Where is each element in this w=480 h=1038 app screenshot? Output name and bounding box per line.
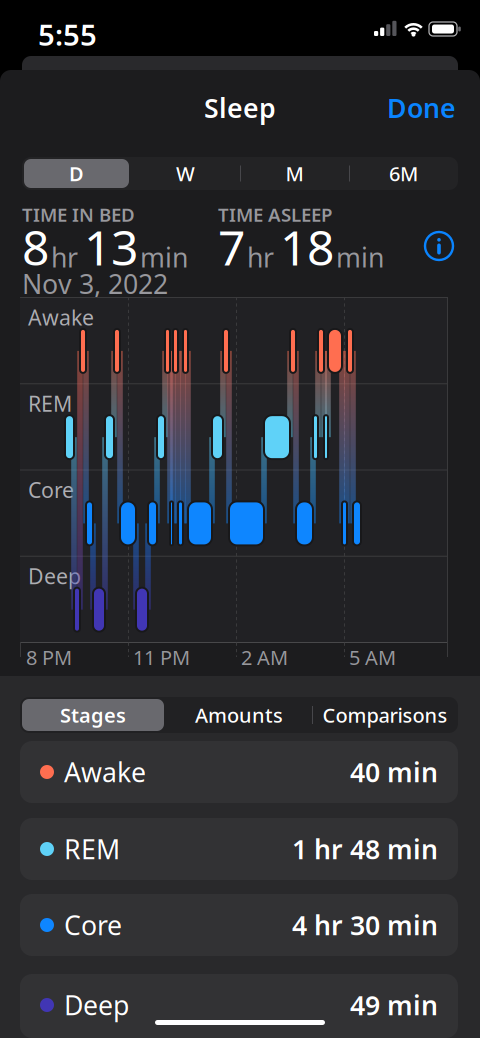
staticText: 40 min	[350, 754, 438, 790]
staticText: REM	[28, 389, 72, 417]
staticText: 11 PM	[133, 644, 190, 671]
staticText: 18	[280, 215, 334, 279]
button[interactable]: D	[22, 157, 131, 190]
staticText: 8 PM	[26, 644, 72, 671]
staticText: min	[140, 239, 188, 275]
staticText: 2 AM	[241, 644, 288, 671]
staticText: 4 hr 30 min	[292, 907, 438, 943]
staticText: 8	[22, 215, 49, 279]
staticText: hr	[247, 239, 274, 275]
button[interactable]: Done	[387, 90, 456, 125]
staticText: Awake	[28, 303, 94, 331]
button[interactable]: M	[240, 157, 349, 190]
staticText: TIME ASLEEP	[218, 202, 332, 227]
staticText: hr	[51, 239, 78, 275]
staticText: Core	[64, 907, 122, 943]
staticText: 7	[218, 215, 245, 279]
staticText: W	[176, 160, 195, 187]
staticText: 13	[84, 215, 138, 279]
staticText: Nov 3, 2022	[22, 266, 168, 301]
button[interactable]: Info	[425, 232, 453, 260]
button[interactable]: 6M	[349, 157, 458, 190]
staticText: Deep	[28, 562, 81, 590]
staticText: 1 hr 48 min	[292, 831, 438, 867]
button[interactable]: Stages	[20, 697, 166, 733]
staticText: 6M	[389, 160, 418, 187]
staticText: Awake	[64, 754, 146, 790]
button[interactable]: W	[131, 157, 240, 190]
staticText: min	[336, 239, 384, 275]
staticText: M	[285, 160, 303, 187]
staticText: D	[69, 160, 84, 187]
staticText: Done	[387, 90, 456, 125]
staticText: Sleep	[204, 90, 276, 125]
staticText: Amounts	[195, 702, 283, 728]
staticText: 5:55	[38, 15, 97, 54]
staticText: Stages	[60, 702, 126, 728]
staticText: TIME IN BED	[22, 202, 135, 227]
staticText: 49 min	[350, 987, 438, 1023]
staticText: Comparisons	[322, 702, 447, 728]
staticText: REM	[64, 831, 120, 867]
staticText: 5 AM	[349, 644, 396, 671]
button[interactable]: Comparisons	[312, 697, 458, 733]
button[interactable]: Amounts	[166, 697, 312, 733]
staticText: Deep	[64, 987, 129, 1023]
staticText: Core	[28, 475, 74, 504]
